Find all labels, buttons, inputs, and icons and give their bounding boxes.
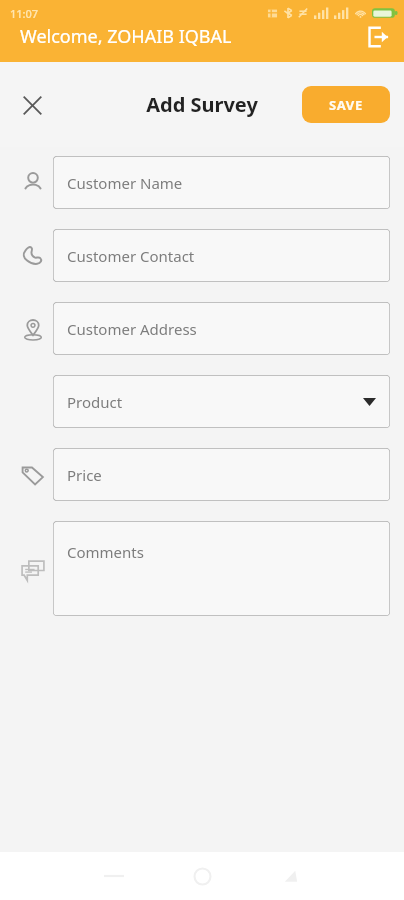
staticText: Price xyxy=(67,465,102,485)
staticText: Customer Address xyxy=(67,319,197,339)
button[interactable]: Customer Contact xyxy=(53,229,390,282)
staticText: Product xyxy=(67,392,123,412)
staticText: Welcome, ZOHAIB IQBAL xyxy=(20,24,232,49)
staticText: Customer Name xyxy=(67,173,183,193)
button[interactable]: Logout xyxy=(360,20,394,54)
staticText: 11:07 xyxy=(10,6,39,21)
staticText: SAVE xyxy=(329,96,363,114)
button[interactable]: Comments xyxy=(53,521,390,616)
button[interactable]: Price xyxy=(53,448,390,501)
staticText: Comments xyxy=(67,542,144,562)
button[interactable]: Customer Name xyxy=(53,156,390,209)
button[interactable]: SAVE xyxy=(302,86,390,123)
button[interactable]: Customer Address xyxy=(53,302,390,355)
staticText: Add Survey xyxy=(146,91,258,118)
button[interactable]: Product xyxy=(53,375,390,428)
button[interactable]: Close xyxy=(12,85,52,125)
staticText: Customer Contact xyxy=(67,246,195,266)
